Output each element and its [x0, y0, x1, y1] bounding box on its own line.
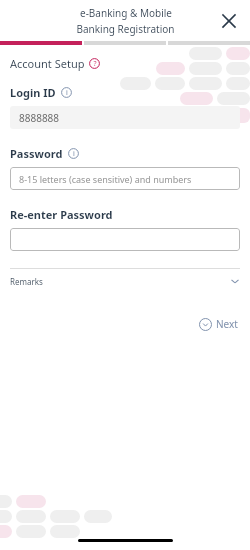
button[interactable]: Help [89, 58, 100, 69]
staticText: Remarks [10, 276, 43, 287]
staticText: Banking Registration [76, 22, 175, 36]
staticText: 8888888 [19, 111, 60, 125]
button[interactable]: 8888888 [10, 106, 240, 129]
staticText: Re-enter Password [10, 207, 113, 222]
staticText: ? [93, 59, 97, 69]
staticText: Password [10, 146, 63, 161]
staticText: Account Setup [10, 56, 85, 71]
staticText: Next [216, 317, 238, 331]
staticText: i [73, 149, 75, 159]
staticText: 8-15 letters (case sensitive) and number… [19, 173, 192, 185]
staticText: Login ID [10, 85, 56, 100]
button[interactable]: Next [197, 315, 240, 333]
staticText: i [66, 88, 68, 98]
button[interactable]: Remarks [10, 269, 240, 293]
button[interactable]: Close [216, 8, 242, 34]
staticText: e-Banking & Mobile [80, 6, 172, 20]
button[interactable] [10, 228, 240, 251]
button[interactable]: 8-15 letters (case sensitive) and number… [10, 167, 240, 190]
